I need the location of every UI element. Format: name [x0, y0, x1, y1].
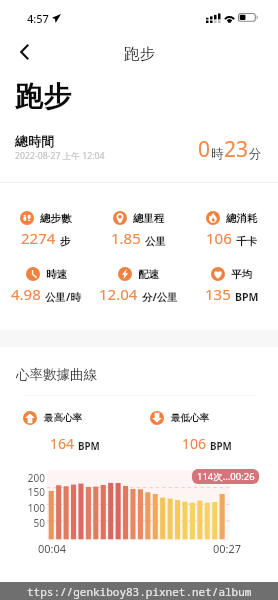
staticText: 200	[14, 471, 45, 485]
staticText: 150	[14, 485, 45, 499]
staticText: 1.85	[111, 228, 141, 248]
staticText: 步	[60, 235, 71, 248]
staticText: 2274	[21, 228, 56, 248]
staticText: 總時間	[15, 133, 54, 149]
staticText: 4:57	[27, 11, 49, 26]
staticText: 總消耗	[226, 212, 258, 225]
button[interactable]: 164	[50, 434, 100, 453]
staticText: 0	[198, 135, 211, 164]
staticText: 配速	[138, 268, 159, 281]
staticText: 總里程	[133, 212, 165, 225]
button[interactable]: 總消耗	[185, 211, 278, 248]
staticText: 最高心率	[44, 412, 82, 424]
staticText: 千卡	[236, 235, 257, 248]
staticText: 最低心率	[171, 412, 209, 424]
staticText: 12.04	[99, 284, 138, 304]
staticText: BPM	[235, 290, 259, 304]
button[interactable]: 最高心率	[23, 411, 82, 425]
staticText: 總步數	[40, 212, 72, 225]
staticText: BPM	[210, 440, 232, 453]
button[interactable]: 配速	[92, 267, 185, 304]
staticText: 100	[14, 501, 45, 515]
staticText: 00:04	[38, 541, 67, 556]
button[interactable]: 平均	[185, 267, 278, 304]
staticText: 106	[182, 434, 207, 453]
staticText: 時速	[46, 268, 67, 281]
button[interactable]: 106	[182, 434, 232, 453]
button[interactable]: 時速	[0, 267, 92, 304]
staticText: 2022-08-27 上午 12:04	[15, 150, 105, 162]
staticText: 公里	[145, 235, 166, 248]
staticText: 164	[50, 434, 75, 453]
staticText: 時	[211, 146, 224, 162]
staticText: 平均	[231, 268, 252, 281]
staticText: 106	[206, 228, 232, 248]
staticText: 跑步	[15, 79, 71, 114]
staticText: 00:27	[213, 541, 242, 556]
button[interactable]: 總里程	[92, 211, 185, 248]
staticText: 50	[14, 516, 45, 530]
staticText: 114次…00:26	[197, 470, 255, 483]
button[interactable]: 總步數	[0, 211, 92, 248]
staticText: 135	[205, 284, 231, 304]
staticText: 23	[224, 135, 249, 164]
staticText: 分/公里	[142, 290, 178, 304]
staticText: 4.98	[11, 284, 41, 304]
staticText: 心率數據曲線	[16, 366, 97, 383]
staticText: 分	[249, 146, 262, 162]
staticText: BPM	[78, 440, 100, 453]
staticText: 跑步	[124, 44, 155, 64]
staticText: 公里/時	[45, 290, 81, 304]
staticText: ttps://genkiboy83.pixnet.net/album	[27, 584, 252, 599]
button[interactable]: Back	[8, 36, 40, 68]
button[interactable]: 最低心率	[150, 411, 209, 425]
